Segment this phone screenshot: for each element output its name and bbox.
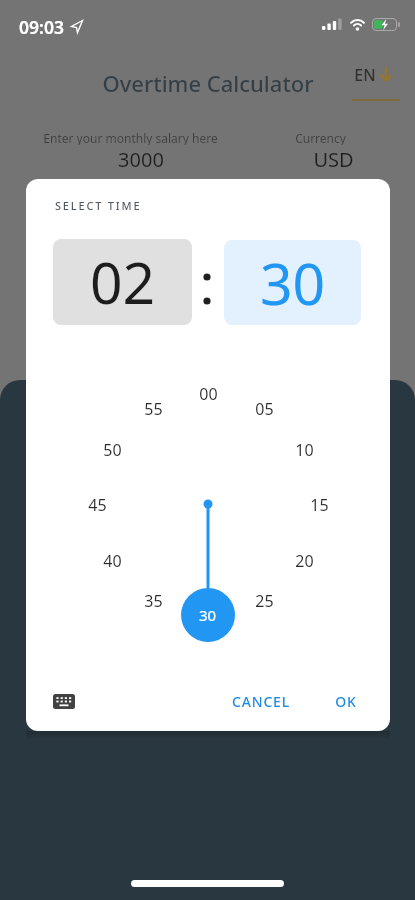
staticText: 40 — [103, 550, 122, 570]
staticText: OK — [335, 692, 357, 711]
button[interactable]: 30 — [181, 588, 235, 642]
staticText: 55 — [144, 398, 163, 418]
button[interactable] — [53, 694, 75, 709]
staticText: 30 — [260, 244, 326, 322]
button[interactable]: 15 — [303, 494, 335, 514]
button[interactable]: 00 — [192, 383, 224, 403]
staticText: 45 — [88, 494, 107, 514]
button[interactable]: 25 — [248, 590, 280, 610]
staticText: 35 — [144, 590, 163, 610]
staticText: SELECT TIME — [55, 198, 142, 213]
button[interactable]: OK — [321, 687, 371, 715]
button[interactable]: 40 — [96, 550, 128, 570]
button[interactable]: 35 — [137, 590, 169, 610]
staticText: 00 — [199, 383, 218, 403]
staticText: 3000 — [118, 146, 164, 172]
staticText: Overtime Calculator — [102, 68, 314, 94]
staticText: 10 — [295, 439, 314, 459]
staticText: 02 — [90, 243, 156, 321]
staticText: 09:03 — [19, 15, 64, 35]
staticText: Currency — [295, 130, 346, 145]
button[interactable]: CANCEL — [201, 687, 321, 715]
button[interactable]: 50 — [96, 439, 128, 459]
button[interactable]: 30 — [224, 240, 361, 325]
button[interactable]: 10 — [288, 439, 320, 459]
button[interactable]: 55 — [137, 398, 169, 418]
staticText: EN — [354, 64, 376, 86]
button[interactable]: 05 — [248, 398, 280, 418]
button[interactable]: 45 — [81, 494, 113, 514]
staticText: 25 — [255, 590, 274, 610]
staticText: 05 — [255, 398, 274, 418]
staticText: Enter your monthly salary here — [43, 130, 218, 145]
staticText: 20 — [295, 550, 314, 570]
button[interactable]: 02 — [53, 239, 192, 325]
staticText: USD — [313, 146, 354, 172]
staticText: 30 — [199, 605, 217, 625]
button[interactable]: EN — [345, 64, 385, 86]
staticText: 15 — [310, 494, 329, 514]
staticText: CANCEL — [232, 692, 290, 711]
button[interactable]: 20 — [288, 550, 320, 570]
staticText: 50 — [103, 439, 122, 459]
